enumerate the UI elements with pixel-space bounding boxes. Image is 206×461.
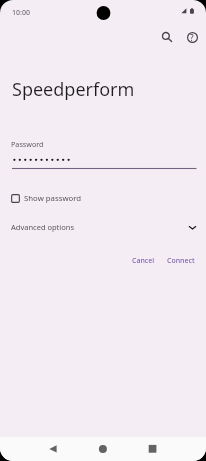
staticText: Cancel bbox=[132, 256, 155, 266]
staticText: Connect bbox=[167, 256, 195, 266]
button[interactable]: Connect bbox=[161, 252, 201, 270]
staticText: ? bbox=[190, 32, 194, 43]
staticText: Show password bbox=[24, 193, 82, 204]
button[interactable]: Show password bbox=[8, 189, 82, 207]
staticText: Speedperform bbox=[12, 77, 135, 102]
button[interactable]: Advanced options bbox=[0, 218, 206, 236]
button[interactable]: Cancel bbox=[126, 252, 161, 270]
button[interactable]: Search bbox=[156, 26, 178, 48]
button[interactable]: Home bbox=[89, 437, 117, 461]
button[interactable]: Back bbox=[39, 437, 67, 461]
button[interactable]: Recent apps bbox=[139, 437, 167, 461]
staticText: Advanced options bbox=[11, 222, 75, 232]
staticText: Password bbox=[11, 139, 44, 149]
staticText: 10:00 bbox=[12, 8, 30, 18]
button[interactable]: Help bbox=[181, 26, 203, 48]
